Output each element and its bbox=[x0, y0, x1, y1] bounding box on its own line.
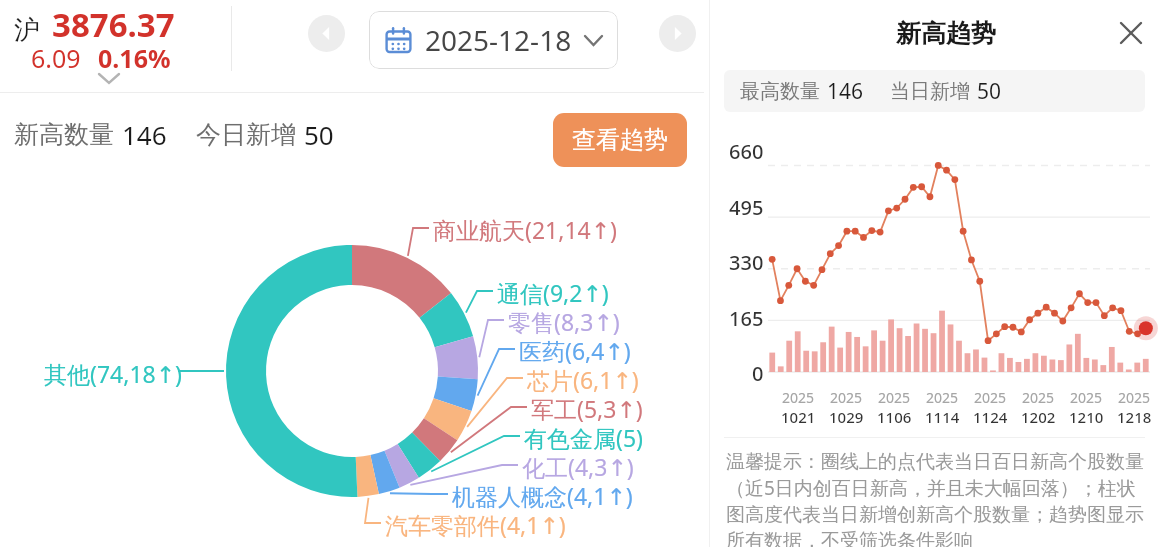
staticText: 1202 bbox=[1021, 407, 1056, 427]
staticText: 3876.37 bbox=[52, 2, 175, 47]
staticText: 660 bbox=[729, 138, 764, 165]
staticText: 0 bbox=[752, 360, 764, 387]
staticText: 新高数量 bbox=[14, 119, 114, 150]
staticText: 2025 bbox=[782, 388, 815, 407]
staticText: 沪 bbox=[14, 14, 40, 47]
staticText: 1210 bbox=[1069, 407, 1104, 427]
staticText: 军工(5,3↑) bbox=[531, 393, 643, 424]
staticText: 有色金属(5) bbox=[524, 422, 643, 453]
staticText: 零售(8,3↑) bbox=[508, 306, 620, 337]
staticText: 医药(6,4↑) bbox=[519, 335, 631, 366]
staticText: 芯片(6,1↑) bbox=[527, 364, 639, 395]
staticText: 2025 bbox=[878, 388, 911, 407]
staticText: 2025 bbox=[974, 388, 1007, 407]
staticText: 2025-12-18 bbox=[425, 21, 572, 59]
staticText: 1021 bbox=[781, 407, 816, 427]
staticText: 1124 bbox=[973, 407, 1008, 427]
staticText: 1218 bbox=[1117, 407, 1152, 427]
staticText: 330 bbox=[729, 249, 764, 276]
button[interactable]: 2025-12-18 bbox=[369, 11, 618, 69]
staticText: 2025 bbox=[830, 388, 863, 407]
staticText: 2025 bbox=[926, 388, 959, 407]
staticText: 查看趋势 bbox=[572, 125, 668, 155]
staticText: 新高趋势 bbox=[896, 18, 996, 49]
staticText: 1106 bbox=[877, 407, 912, 427]
staticText: 商业航天(21,14↑) bbox=[433, 214, 617, 245]
staticText: 1114 bbox=[925, 407, 960, 427]
staticText: 1029 bbox=[829, 407, 864, 427]
button[interactable]: Previous day bbox=[308, 15, 345, 52]
staticText: 146 bbox=[122, 117, 167, 152]
staticText: 机器人概念(4,1↑) bbox=[452, 480, 633, 511]
button[interactable]: 查看趋势 bbox=[553, 113, 687, 167]
staticText: 化工(4,3↑) bbox=[522, 451, 634, 482]
staticText: 最高数量 bbox=[740, 79, 820, 104]
staticText: 2025 bbox=[1022, 388, 1055, 407]
button[interactable]: Next day bbox=[659, 15, 696, 52]
staticText: 146 bbox=[827, 77, 864, 106]
staticText: 今日新增 bbox=[196, 119, 296, 150]
staticText: 汽车零部件(4,1↑) bbox=[385, 509, 566, 540]
button[interactable]: Close bbox=[1110, 12, 1152, 54]
staticText: 0.16% bbox=[98, 41, 171, 75]
staticText: 温馨提示：圈线上的点代表当日百日新高个股数量（近5日内创百日新高，并且未大幅回落… bbox=[726, 450, 1146, 547]
staticText: 2025 bbox=[1070, 388, 1103, 407]
staticText: 495 bbox=[729, 194, 764, 221]
staticText: 其他(74,18↑) bbox=[44, 358, 182, 389]
staticText: 当日新增 bbox=[890, 79, 970, 104]
staticText: 2025 bbox=[1118, 388, 1151, 407]
staticText: 50 bbox=[304, 117, 334, 152]
staticText: 165 bbox=[729, 305, 764, 332]
button[interactable]: Expand index bbox=[92, 69, 126, 87]
staticText: 6.09 bbox=[31, 41, 81, 75]
staticText: 通信(9,2↑) bbox=[497, 277, 609, 308]
staticText: 50 bbox=[977, 77, 1002, 106]
